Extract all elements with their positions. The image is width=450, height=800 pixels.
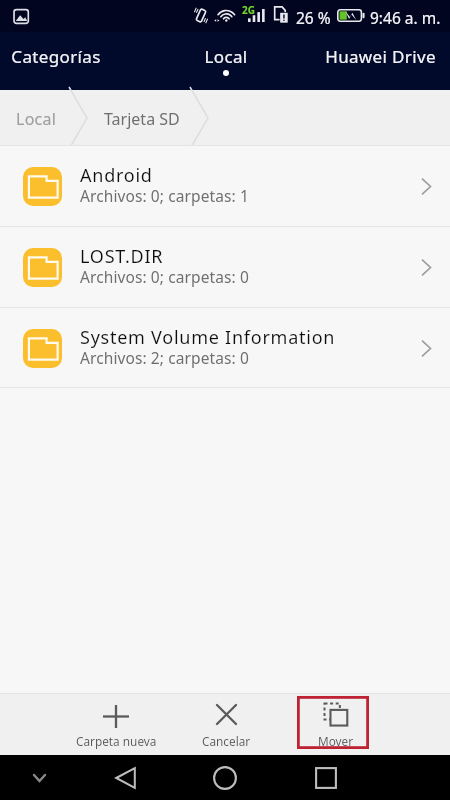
button[interactable]: System Volume Information [0,308,450,388]
staticText: Categorías [11,45,101,68]
staticText: 26 % [296,7,331,28]
staticText: Cancelar [202,733,251,749]
staticText: 2G [242,3,255,17]
staticText: Mover [318,733,354,749]
staticText: Local [204,45,248,68]
staticText: System Volume Information [80,325,336,350]
staticText: Android [80,163,153,188]
button[interactable]: Home [185,755,265,800]
staticText: Carpeta nueva [76,733,157,749]
staticText: Archivos: 2; carpetas: 0 [80,347,249,368]
button[interactable]: Recents [286,755,366,800]
button[interactable]: Huawei Drive [311,32,450,90]
staticText: Archivos: 0; carpetas: 0 [80,266,249,287]
button[interactable]: Cancelar [171,693,281,755]
button[interactable]: Back [85,755,165,800]
staticText: Tarjeta SD [104,108,180,130]
button[interactable]: Android [0,146,450,227]
button[interactable]: Local [150,32,301,90]
staticText: Local [16,108,57,130]
button[interactable]: Hide keyboard [10,755,68,800]
button[interactable]: Carpeta nueva [61,693,171,755]
button[interactable]: Categorías [0,32,112,90]
staticText: 9:46 a. m. [370,7,441,28]
staticText: Huawei Drive [325,45,436,68]
button[interactable]: Mover [281,693,391,755]
button[interactable]: Tarjeta SD [95,90,190,146]
staticText: Archivos: 0; carpetas: 1 [80,185,249,206]
button[interactable]: LOST.DIR [0,227,450,308]
staticText: LOST.DIR [80,244,164,269]
button[interactable]: Local [0,90,70,146]
